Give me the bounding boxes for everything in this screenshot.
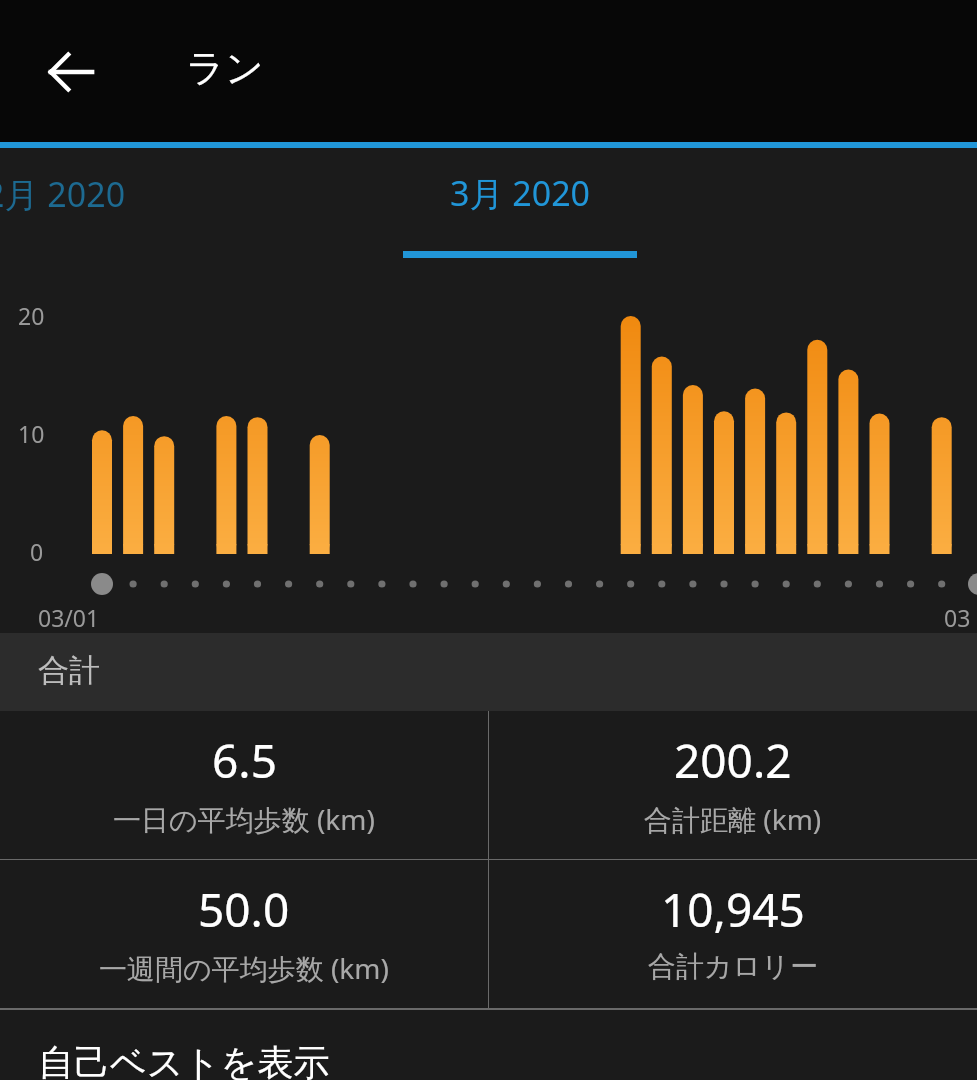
staticText: 合計距離 (km) bbox=[644, 800, 822, 838]
button[interactable]: 2月 2020 bbox=[0, 148, 170, 258]
staticText: 03/01 bbox=[38, 602, 100, 633]
button[interactable]: Back bbox=[38, 39, 104, 105]
staticText: 0 bbox=[30, 536, 44, 567]
staticText: 50.0 bbox=[198, 878, 290, 941]
staticText: 一日の平均歩数 (km) bbox=[113, 800, 375, 838]
staticText: 20 bbox=[18, 300, 45, 331]
staticText: 03 bbox=[944, 602, 971, 633]
staticText: 2月 2020 bbox=[0, 171, 126, 217]
staticText: 合計 bbox=[38, 651, 100, 690]
staticText: 200.2 bbox=[674, 729, 792, 792]
button[interactable]: 50.0 bbox=[0, 860, 488, 1008]
button[interactable]: 3月 2020 bbox=[403, 148, 637, 258]
staticText: 3月 2020 bbox=[403, 170, 637, 216]
button[interactable]: 10,945 bbox=[489, 860, 977, 1008]
staticText: 10,945 bbox=[661, 878, 805, 941]
button[interactable]: 6.5 bbox=[0, 711, 488, 859]
staticText: 6.5 bbox=[212, 729, 277, 792]
button[interactable]: 200.2 bbox=[489, 711, 977, 859]
button[interactable]: 自己ベストを表示 bbox=[0, 1010, 977, 1080]
staticText: 10 bbox=[18, 418, 45, 449]
staticText: 合計カロリー bbox=[648, 949, 818, 984]
staticText: 自己ベストを表示 bbox=[38, 1040, 330, 1080]
staticText: ラン bbox=[186, 44, 264, 92]
staticText: 一週間の平均歩数 (km) bbox=[99, 949, 389, 987]
